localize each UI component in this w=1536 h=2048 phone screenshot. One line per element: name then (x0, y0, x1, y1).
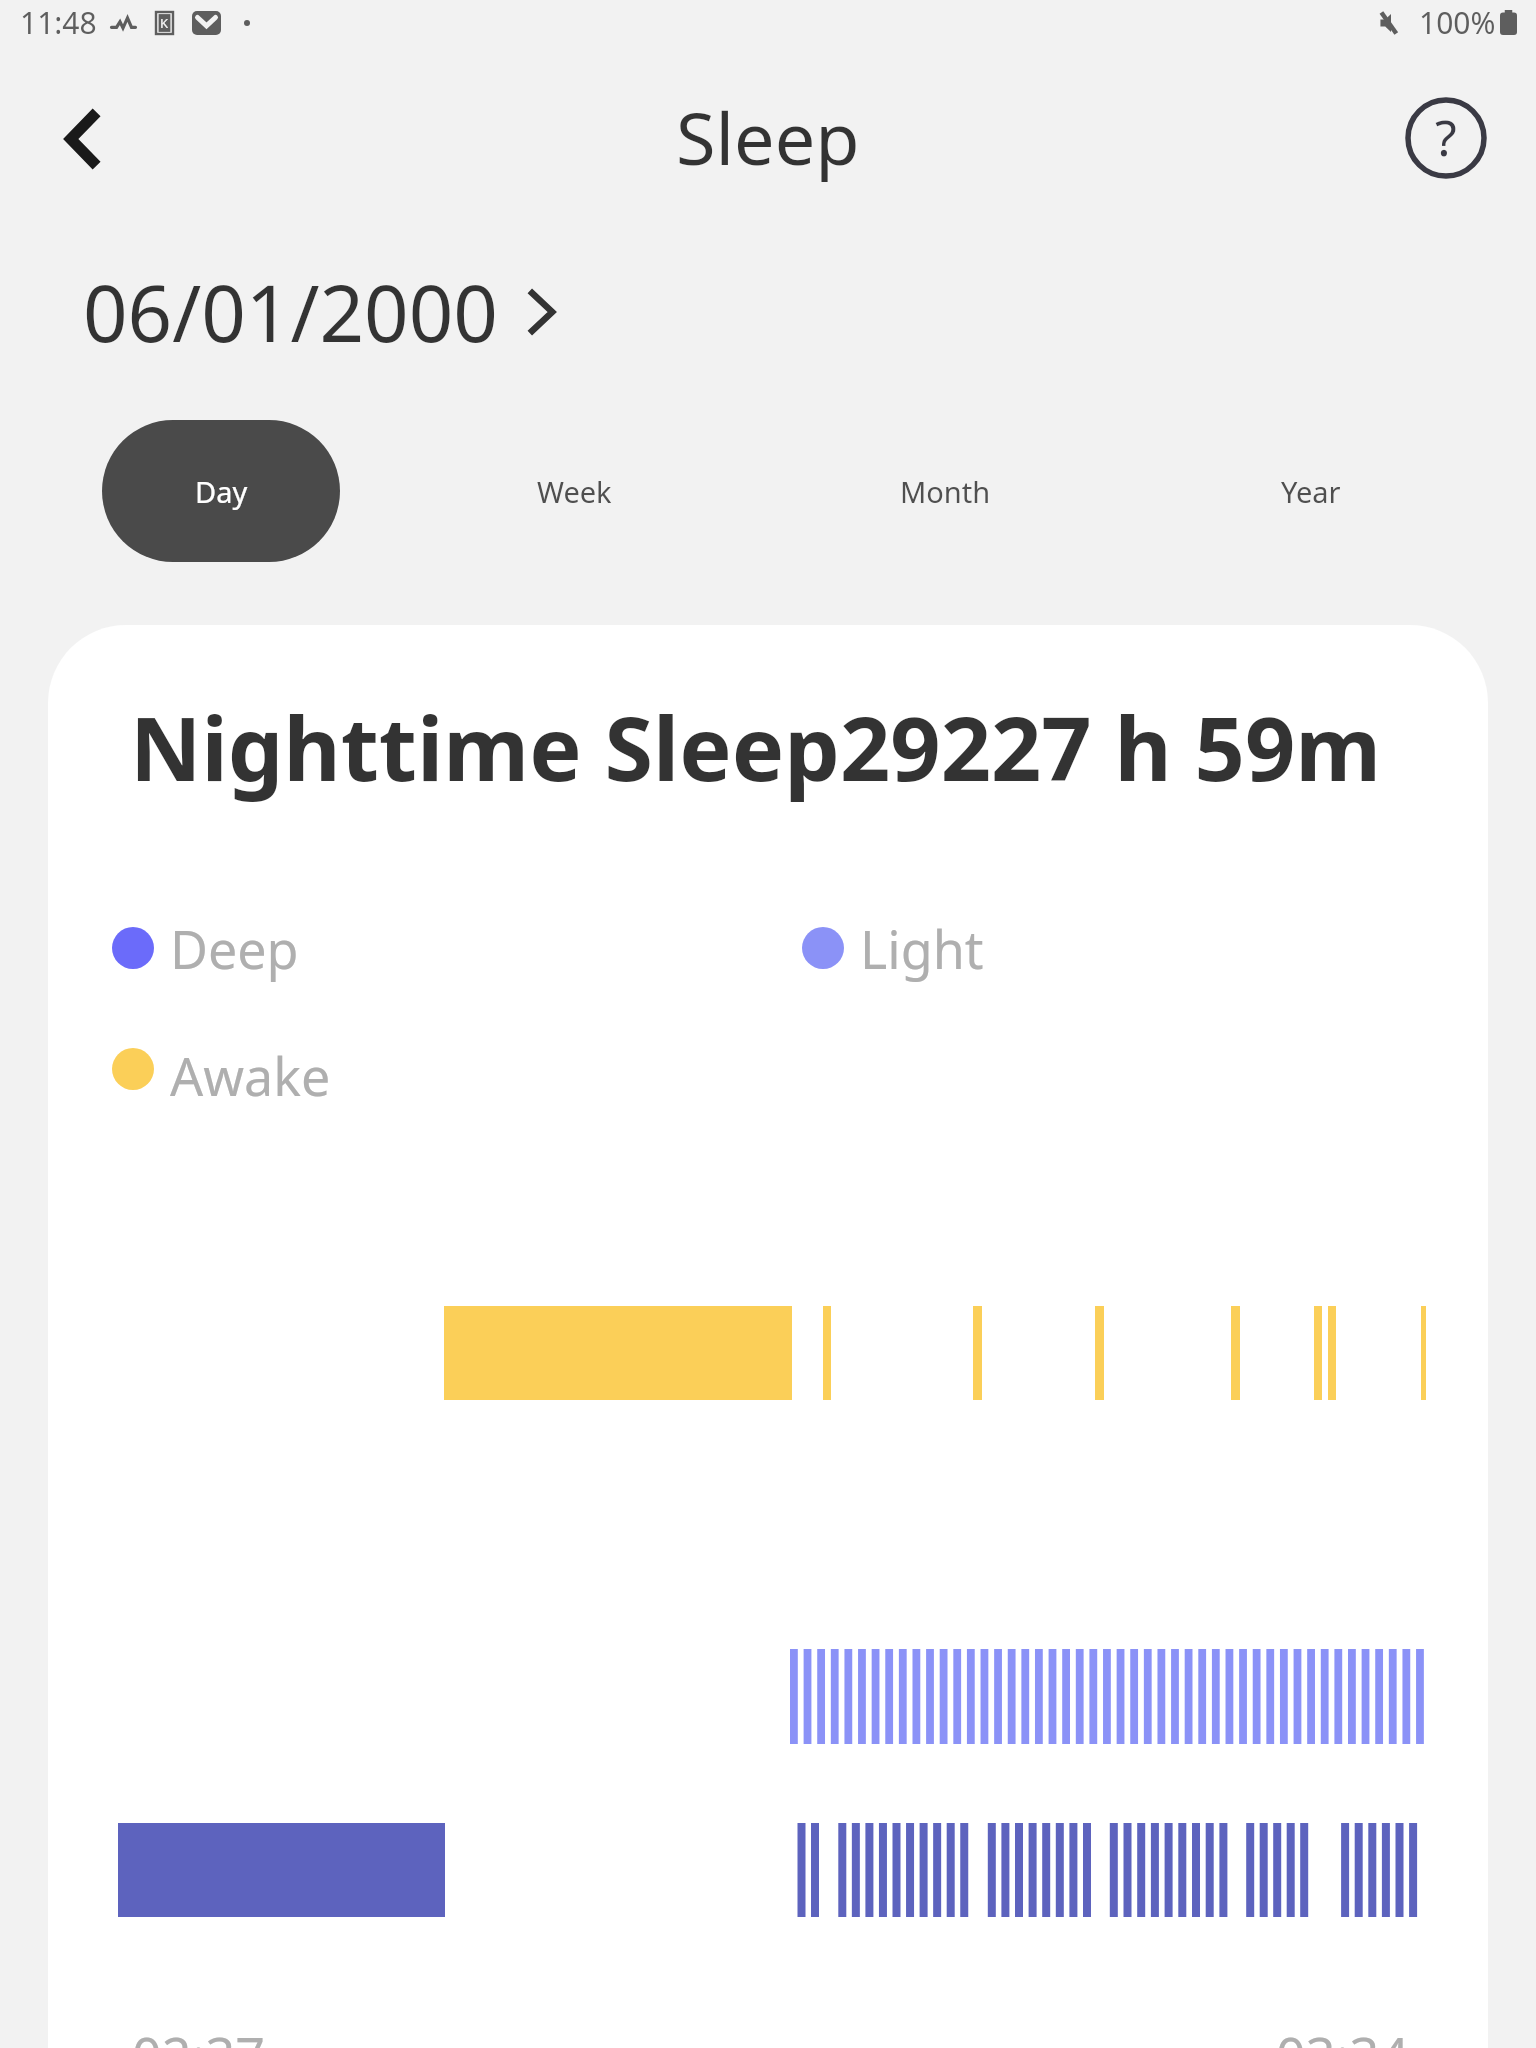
staticText: Sleep (676, 88, 860, 186)
button[interactable]: 06/01/2000 (83, 259, 558, 351)
staticText: Deep (170, 913, 299, 984)
staticText: Year (1281, 472, 1341, 511)
button[interactable]: Back (27, 83, 139, 195)
staticText: 02:37 (132, 2020, 265, 2048)
staticText: 11:48 (20, 2, 97, 43)
button[interactable]: Year (1192, 420, 1430, 562)
staticText: 06/01/2000 (83, 259, 498, 351)
staticText: Awake (170, 1040, 331, 1111)
button[interactable]: Day (102, 420, 340, 562)
staticText: Nighttime Sleep29227 h 59m (130, 687, 1382, 807)
staticText: Month (900, 472, 991, 511)
staticText: 100% (1419, 2, 1496, 43)
staticText: Day (195, 472, 248, 511)
staticText: Week (537, 472, 612, 511)
staticText: Light (860, 913, 984, 984)
staticText: 03:34 (1276, 2020, 1409, 2048)
button[interactable]: Nighttime Sleep29227 h 59m (48, 625, 1488, 2048)
button[interactable]: Week (455, 420, 693, 562)
staticText: ? (1435, 103, 1457, 171)
staticText: K (160, 14, 169, 32)
button[interactable]: Help (1390, 82, 1502, 194)
button[interactable]: Month (826, 420, 1064, 562)
